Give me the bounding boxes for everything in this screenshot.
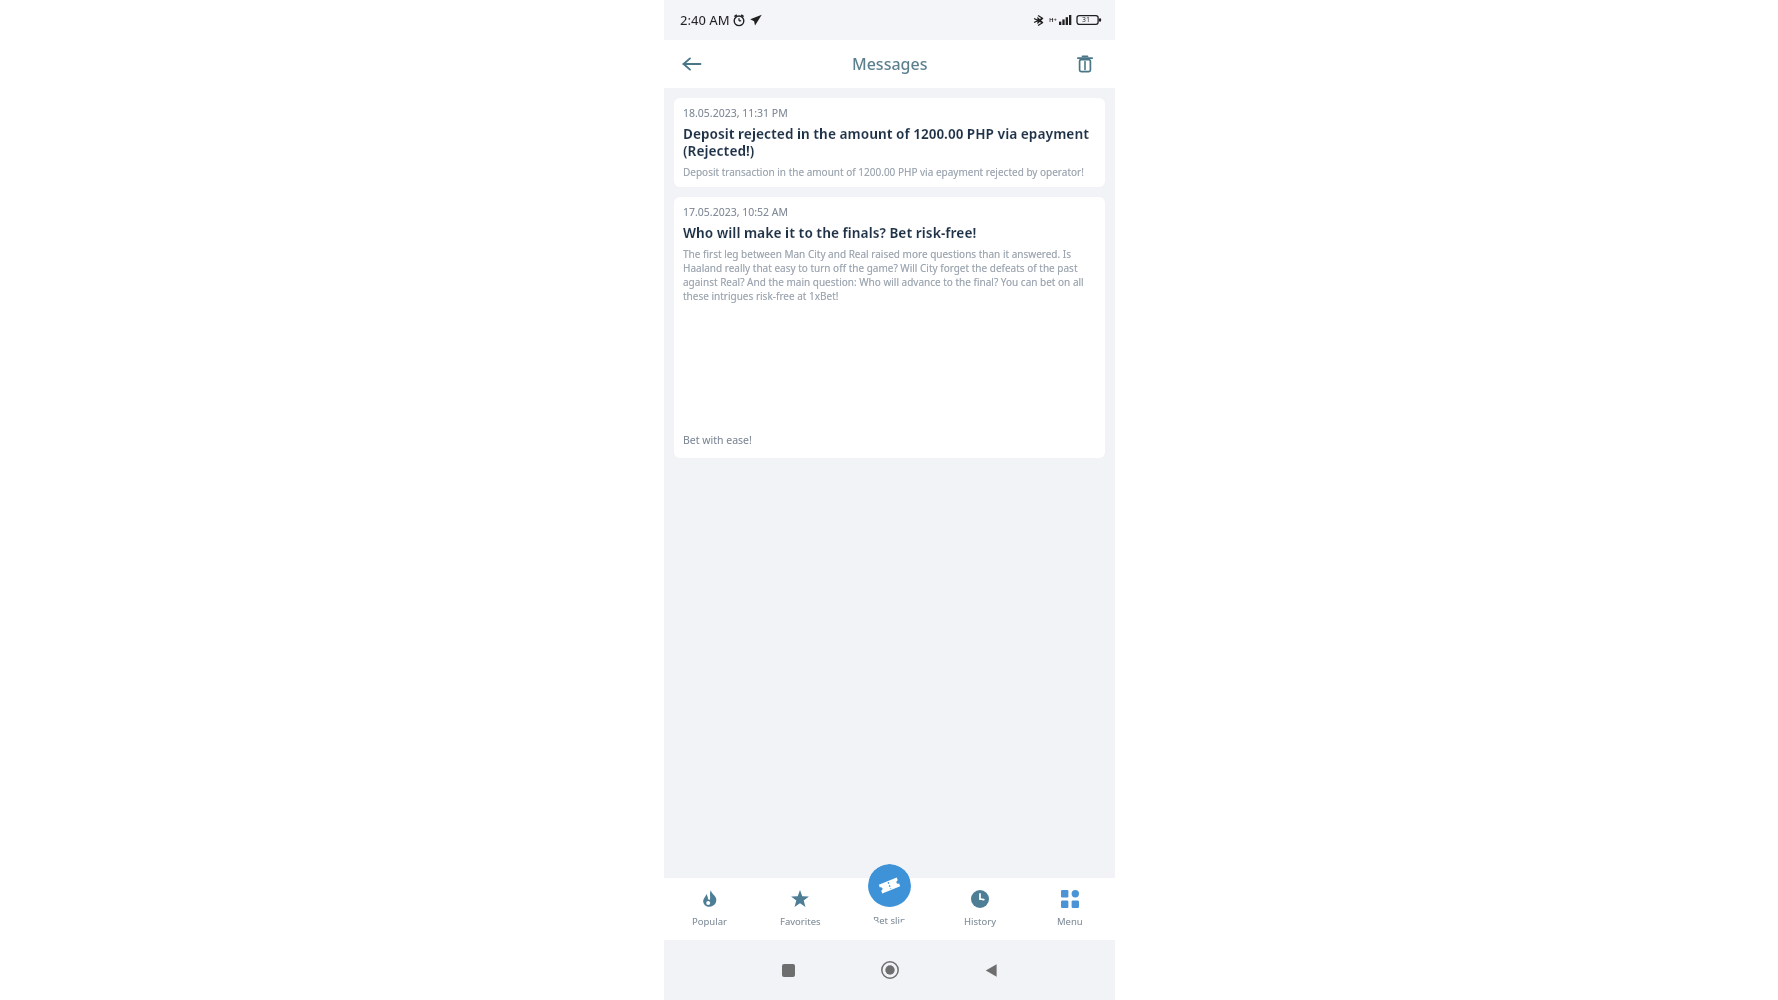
- staticText: Bet slip: [873, 914, 906, 926]
- button[interactable]: Back: [971, 950, 1011, 990]
- staticText: History: [964, 915, 996, 928]
- staticText: Bet with ease!: [683, 433, 752, 447]
- button[interactable]: Home: [870, 950, 910, 990]
- button[interactable]: 17.05.2023, 10:52 AM: [674, 197, 1105, 458]
- staticText: The first leg between Man City and Real …: [683, 247, 1096, 303]
- staticText: Deposit rejected in the amount of 1200.0…: [683, 125, 1096, 160]
- button[interactable]: Recent apps: [768, 950, 808, 990]
- staticText: Messages: [852, 53, 928, 75]
- staticText: Popular: [692, 915, 727, 928]
- button[interactable]: 18.05.2023, 11:31 PM: [674, 98, 1105, 187]
- button[interactable]: Menu: [1025, 878, 1115, 940]
- staticText: 31: [1082, 15, 1091, 25]
- staticText: 17.05.2023, 10:52 AM: [683, 205, 789, 219]
- button[interactable]: Favorites: [755, 878, 845, 940]
- staticText: 18.05.2023, 11:31 PM: [683, 106, 788, 120]
- staticText: Favorites: [780, 915, 821, 928]
- staticText: Menu: [1057, 915, 1083, 928]
- staticText: 2:40 AM: [680, 11, 730, 29]
- staticText: Deposit transaction in the amount of 120…: [683, 165, 1084, 179]
- button[interactable]: Bet slip: [868, 864, 911, 926]
- staticText: H+: [1049, 16, 1058, 24]
- button[interactable]: History: [935, 878, 1025, 940]
- button[interactable]: Back: [672, 44, 712, 84]
- button[interactable]: Popular: [664, 878, 755, 940]
- staticText: Who will make it to the finals? Bet risk…: [683, 224, 977, 242]
- button[interactable]: Delete all messages: [1065, 44, 1105, 84]
